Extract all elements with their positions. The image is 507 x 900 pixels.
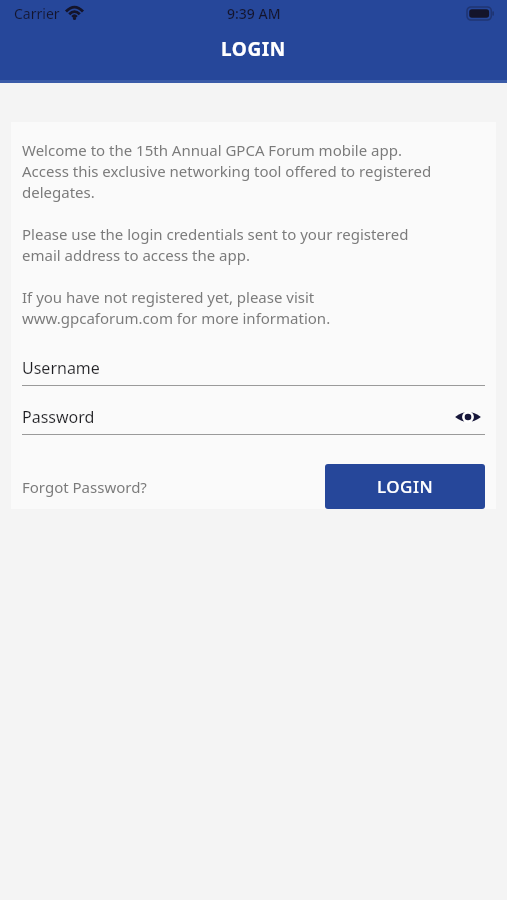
staticText: Access this exclusive networking tool of… xyxy=(22,161,432,181)
staticText: Carrier xyxy=(14,4,60,23)
staticText: email address to access the app. xyxy=(22,245,250,265)
button[interactable]: Forgot Password? xyxy=(22,464,147,509)
staticText: Please use the login credentials sent to… xyxy=(22,224,409,244)
staticText: 9:39 AM xyxy=(227,4,281,23)
staticText: Password xyxy=(22,406,95,428)
staticText: LOGIN xyxy=(221,36,286,62)
button[interactable]: Show password xyxy=(451,400,485,434)
staticText: Forgot Password? xyxy=(22,477,147,497)
staticText: If you have not registered yet, please v… xyxy=(22,287,315,307)
button[interactable]: Username xyxy=(22,350,485,385)
staticText: www.gpcaforum.com for more information. xyxy=(22,308,331,328)
staticText: LOGIN xyxy=(377,475,434,498)
staticText: Welcome to the 15th Annual GPCA Forum mo… xyxy=(22,140,402,160)
staticText: delegates. xyxy=(22,182,95,202)
button[interactable]: Password xyxy=(22,399,485,434)
staticText: Username xyxy=(22,357,100,379)
button[interactable]: LOGIN xyxy=(325,464,485,509)
